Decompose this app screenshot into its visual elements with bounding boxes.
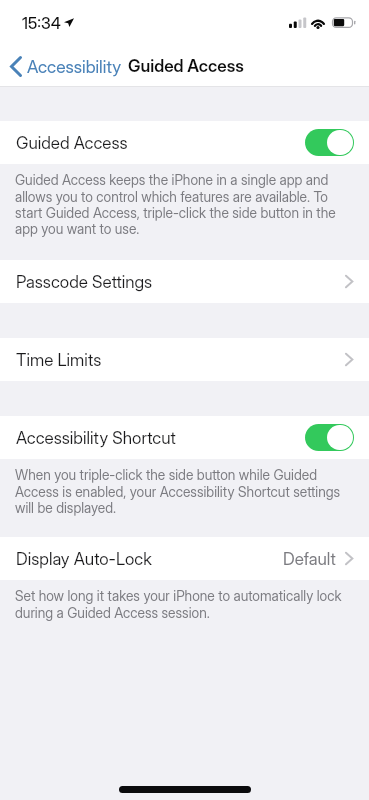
button[interactable]: Guided Access <box>305 129 354 156</box>
staticText: Guided Access keeps the iPhone in a sing… <box>15 172 344 237</box>
staticText: Time Limits <box>16 350 102 371</box>
staticText: Passcode Settings <box>16 272 153 293</box>
button[interactable]: Accessibility <box>0 51 128 82</box>
staticText: Guided Access <box>128 56 244 77</box>
staticText: Accessibility Shortcut <box>16 428 176 449</box>
staticText: Guided Access <box>16 133 128 154</box>
staticText: Display Auto-Lock <box>16 549 152 570</box>
button[interactable]: Accessibility Shortcut <box>305 424 354 451</box>
button[interactable]: Time Limits <box>0 338 369 381</box>
button[interactable]: Display Auto-Lock <box>0 537 369 580</box>
staticText: 15:34 <box>22 13 61 32</box>
staticText: Default <box>283 549 336 570</box>
staticText: Set how long it takes your iPhone to aut… <box>15 588 344 621</box>
button[interactable]: Accessibility Shortcut <box>0 416 369 459</box>
staticText: Accessibility <box>27 56 122 77</box>
staticText: When you triple-click the side button wh… <box>15 467 344 516</box>
button[interactable]: Guided Access <box>0 121 369 164</box>
button[interactable]: Passcode Settings <box>0 260 369 303</box>
